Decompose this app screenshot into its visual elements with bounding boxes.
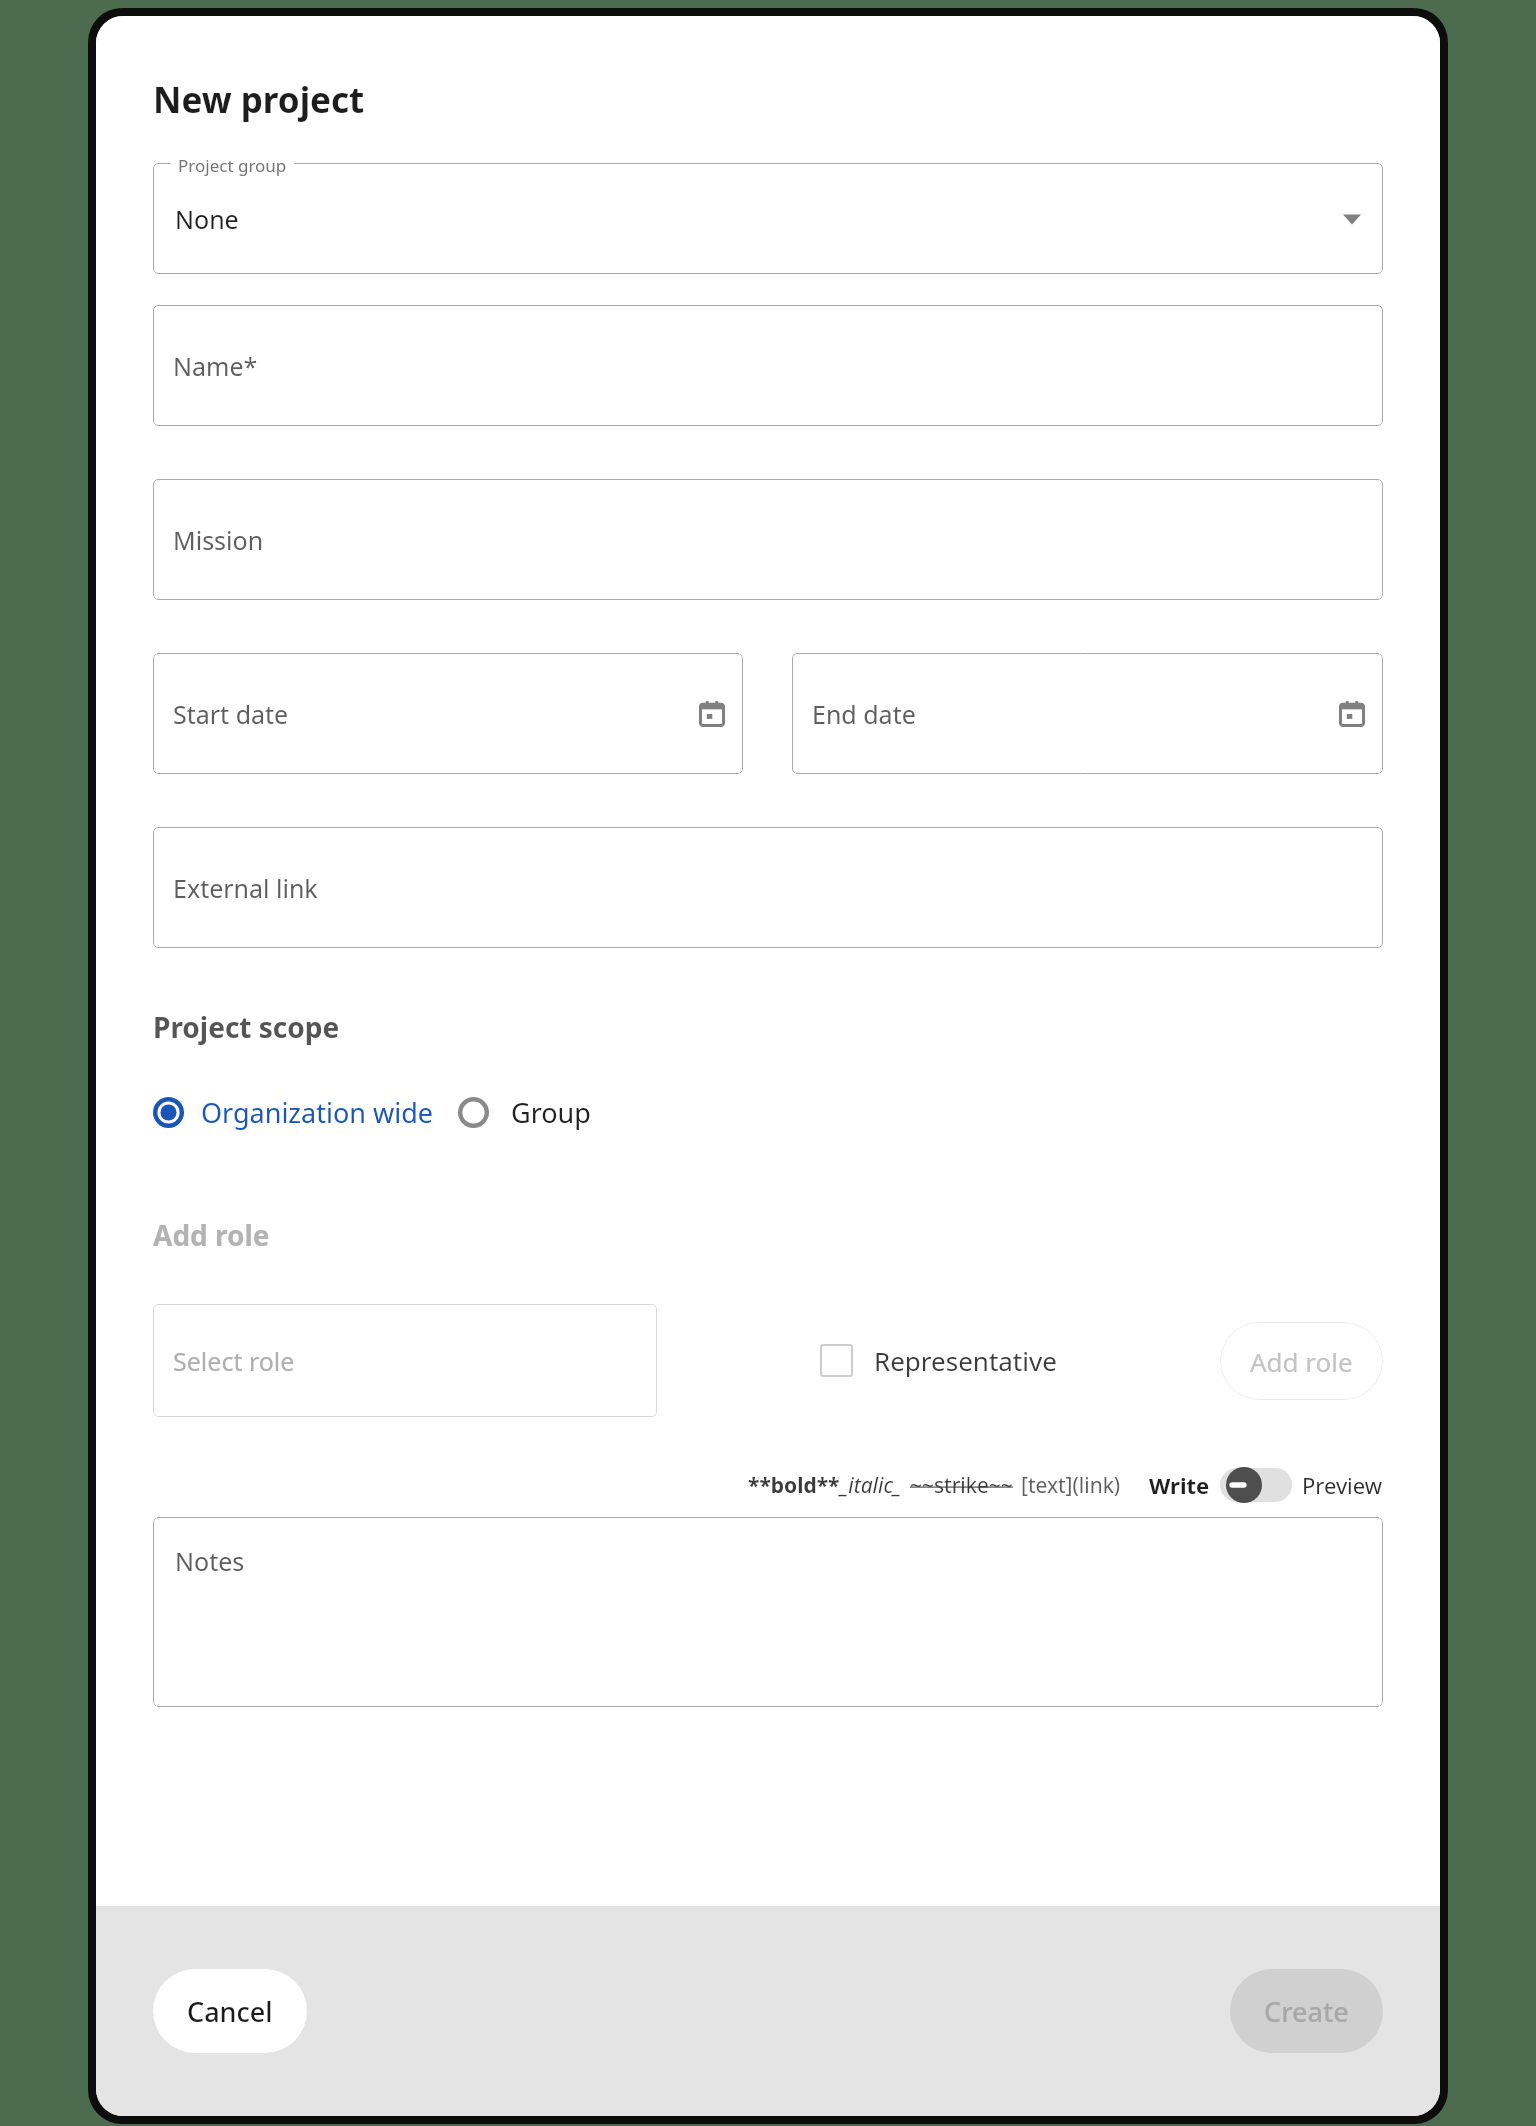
staticText: [text](link) xyxy=(1021,1471,1121,1500)
button[interactable]: Create xyxy=(1230,1969,1383,2053)
button[interactable]: Organization wide xyxy=(153,1094,433,1131)
staticText: ~~strike~~ xyxy=(910,1471,1013,1500)
button[interactable]: Mission xyxy=(153,479,1383,600)
staticText: Add role xyxy=(1250,1344,1353,1379)
staticText: Preview xyxy=(1302,1470,1383,1500)
button[interactable]: Toggle write or preview xyxy=(1220,1467,1292,1503)
staticText: Add role xyxy=(153,1216,270,1254)
staticText: Cancel xyxy=(187,1993,273,2030)
staticText: Select role xyxy=(173,1344,295,1378)
staticText: New project xyxy=(153,76,365,124)
button[interactable]: Select role xyxy=(153,1304,657,1417)
button[interactable]: Cancel xyxy=(153,1969,307,2053)
button[interactable]: Name* xyxy=(153,305,1383,426)
button[interactable]: None xyxy=(153,163,1383,274)
staticText: Representative xyxy=(874,1343,1057,1378)
staticText: Notes xyxy=(175,1544,245,1578)
staticText: End date xyxy=(812,697,916,731)
staticText: Create xyxy=(1264,1993,1349,2030)
button[interactable]: End date xyxy=(792,653,1383,774)
staticText: Start date xyxy=(173,697,289,731)
button[interactable]: Start date xyxy=(153,653,743,774)
button[interactable]: Representative xyxy=(820,1343,1057,1378)
other: Pick date xyxy=(699,701,725,727)
other: Open dropdown xyxy=(1343,210,1361,228)
button[interactable]: External link xyxy=(153,827,1383,948)
staticText: External link xyxy=(173,871,318,905)
other: Pick date xyxy=(1339,701,1365,727)
button[interactable]: Notes xyxy=(153,1517,1383,1707)
staticText: Project group xyxy=(178,154,287,177)
staticText: _italic_ xyxy=(840,1471,902,1500)
button[interactable]: Group xyxy=(458,1094,591,1131)
staticText: Write xyxy=(1149,1470,1210,1500)
staticText: **bold** xyxy=(748,1471,840,1500)
staticText: Mission xyxy=(173,523,264,557)
button[interactable]: Add role xyxy=(1220,1322,1383,1400)
staticText: Name* xyxy=(173,349,258,383)
staticText: Group xyxy=(511,1094,591,1131)
staticText: Project scope xyxy=(153,1008,340,1046)
staticText: Organization wide xyxy=(201,1094,433,1131)
staticText: None xyxy=(175,202,239,236)
